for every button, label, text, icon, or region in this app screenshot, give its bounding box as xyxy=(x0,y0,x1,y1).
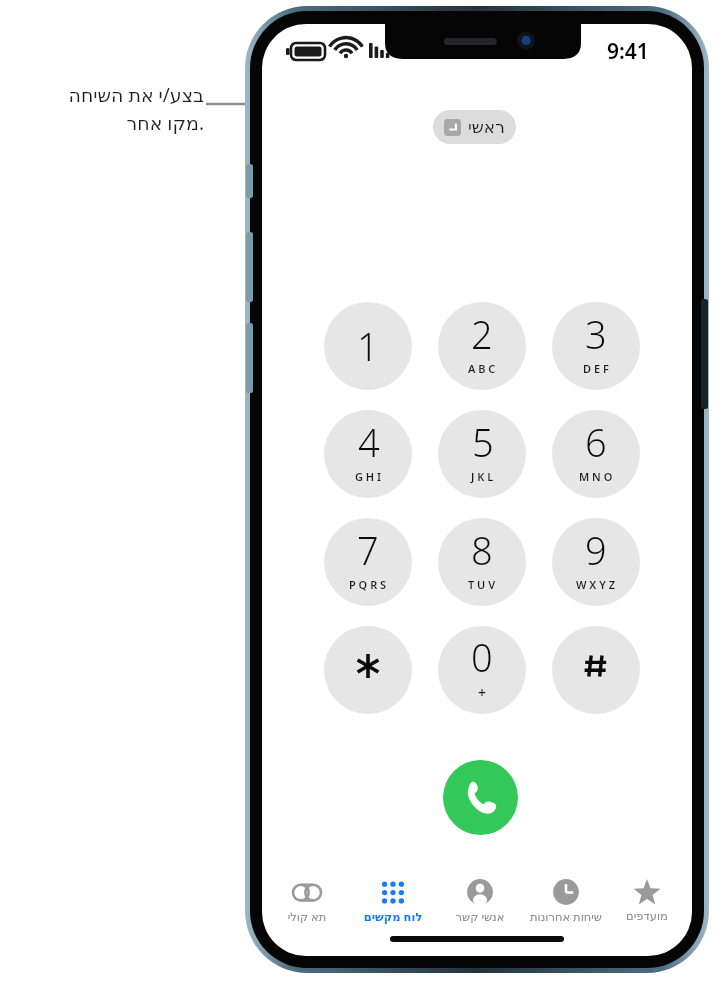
staticText: P Q R S xyxy=(349,577,387,592)
button[interactable]: 2 xyxy=(438,302,526,390)
staticText: ראשי xyxy=(468,117,505,137)
button[interactable]: 6 xyxy=(552,410,640,498)
staticText: W X Y Z xyxy=(576,577,616,592)
button[interactable]: Call xyxy=(443,760,518,835)
staticText: לוח מקשים xyxy=(343,909,443,925)
staticText: 6 xyxy=(585,416,607,468)
button[interactable] xyxy=(552,626,640,714)
staticText: + xyxy=(478,683,487,702)
staticText: 9:41 xyxy=(607,37,649,66)
staticText: G H I xyxy=(355,469,382,484)
button[interactable] xyxy=(324,626,412,714)
staticText: 0 xyxy=(471,631,493,683)
button[interactable]: 8 xyxy=(438,518,526,606)
staticText: 8 xyxy=(471,524,493,576)
staticText: A B C xyxy=(468,361,496,376)
staticText: שיחות אחרונות xyxy=(516,909,616,925)
staticText: J K L xyxy=(471,469,494,484)
staticText: 4 xyxy=(358,416,380,468)
staticText: D E F xyxy=(583,361,609,376)
button[interactable]: 0 xyxy=(438,626,526,714)
button[interactable]: לוח מקשים xyxy=(343,878,443,925)
staticText: תא קולי xyxy=(262,909,357,925)
staticText: 3 xyxy=(585,308,607,360)
button[interactable]: 4 xyxy=(324,410,412,498)
button[interactable]: 9 xyxy=(552,518,640,606)
staticText: אנשי קשר xyxy=(430,909,530,925)
button[interactable]: תא קולי xyxy=(262,878,357,925)
button[interactable]: 3 xyxy=(552,302,640,390)
staticText: 5 xyxy=(472,416,494,468)
staticText: M N O xyxy=(579,469,613,484)
button[interactable]: 1 xyxy=(324,302,412,390)
staticText: 2 xyxy=(471,308,493,360)
button[interactable]: שיחות אחרונות xyxy=(516,878,616,925)
staticText: בצע/י את השיחה מקו אחר. xyxy=(12,82,204,135)
staticText: 1 xyxy=(357,320,379,372)
staticText: T U V xyxy=(468,577,496,592)
staticText: 9 xyxy=(585,524,607,576)
button[interactable]: ראשי xyxy=(433,110,516,144)
staticText: 7 xyxy=(357,524,379,576)
button[interactable]: אנשי קשר xyxy=(430,878,530,925)
button[interactable]: מועדפים xyxy=(597,878,692,922)
button[interactable]: 7 xyxy=(324,518,412,606)
staticText: מועדפים xyxy=(597,909,692,922)
button[interactable]: 5 xyxy=(438,410,526,498)
